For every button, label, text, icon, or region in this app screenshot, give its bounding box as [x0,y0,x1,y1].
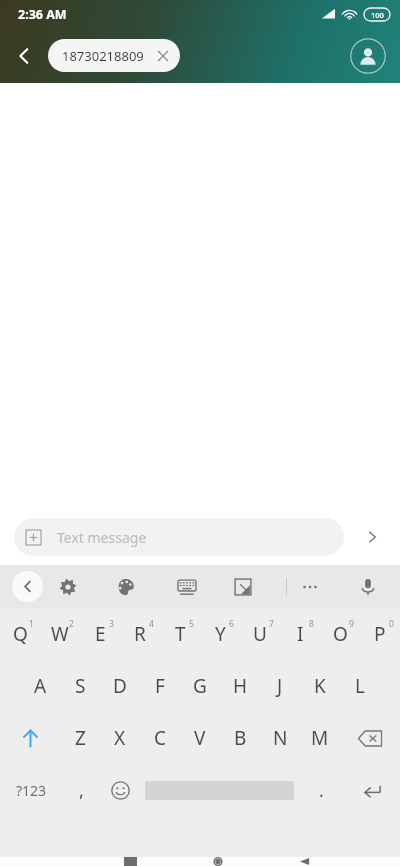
button[interactable]: P [360,608,400,660]
button[interactable]: , [62,764,101,816]
staticText: M [311,725,329,751]
button[interactable]: Z [60,712,100,764]
button[interactable]: Back [12,571,43,602]
staticText: 6 [229,618,234,630]
staticText: 7 [269,618,274,630]
staticText: 1 [29,618,34,630]
staticText: 0 [389,618,394,630]
button[interactable]: Emoji [101,764,140,816]
staticText: K [314,673,326,699]
button[interactable]: Back [261,857,348,866]
button[interactable]: B [220,712,260,764]
button[interactable]: Y [200,608,240,660]
staticText: G [193,673,207,699]
button[interactable]: Clear [154,47,172,65]
staticText: L [355,673,365,699]
button[interactable]: Home [174,857,261,866]
staticText: Z [75,725,86,751]
button[interactable]: E [80,608,120,660]
button[interactable]: Contact [342,30,394,82]
button[interactable]: X [100,712,140,764]
button[interactable]: R [120,608,160,660]
button[interactable]: F [140,660,180,712]
button[interactable]: More options [291,568,329,606]
button[interactable]: O [320,608,360,660]
button[interactable]: K [300,660,340,712]
staticText: F [155,673,165,699]
button[interactable]: Enter [345,764,400,816]
button[interactable]: L [340,660,380,712]
button[interactable]: Back [0,32,48,80]
staticText: Q [13,621,28,647]
staticText: H [233,673,248,699]
staticText: V [194,725,206,751]
button[interactable]: Keyboard layout [168,568,206,606]
staticText: D [113,673,127,699]
button[interactable]: W [40,608,80,660]
button[interactable]: U [240,608,280,660]
staticText: N [273,725,288,751]
staticText: 5 [189,618,194,630]
staticText: Y [215,621,226,647]
staticText: 8 [309,618,314,630]
staticText: O [333,621,348,647]
button[interactable]: M [300,712,340,764]
button[interactable]: D [100,660,140,712]
staticText: R [134,621,146,647]
button[interactable]: V [180,712,220,764]
staticText: S [75,673,86,699]
button[interactable]: J [260,660,300,712]
button[interactable]: N [260,712,300,764]
staticText: U [253,621,267,647]
button[interactable]: T [160,608,200,660]
button[interactable]: Theme [107,568,145,606]
staticText: ?123 [16,781,47,800]
staticText: 3 [109,618,114,630]
staticText: E [95,621,106,647]
button[interactable]: 18730218809 [48,39,180,72]
staticText: 2:36 AM [18,6,67,23]
staticText: X [114,725,126,751]
button[interactable]: Q [0,608,40,660]
button[interactable]: Send [344,513,400,561]
staticText: 100 [371,10,384,20]
button[interactable]: C [140,712,180,764]
button[interactable]: Settings [49,568,87,606]
staticText: B [234,725,247,751]
staticText: 9 [349,618,354,630]
staticText: Text message [57,528,147,547]
button[interactable]: G [180,660,220,712]
button[interactable]: . [298,764,345,816]
staticText: . [319,778,324,803]
staticText: 2 [69,618,74,630]
staticText: C [154,725,167,751]
button[interactable]: A [20,660,60,712]
button[interactable]: H [220,660,260,712]
button[interactable]: S [60,660,100,712]
button[interactable]: Recent apps [87,857,174,866]
staticText: 18730218809 [62,47,144,65]
button[interactable]: Voice input [349,568,387,606]
staticText: W [51,621,69,647]
button[interactable]: Shift [0,712,60,764]
button[interactable]: Text message [14,518,344,556]
staticText: T [175,621,186,647]
staticText: A [34,673,47,699]
button[interactable]: ?123 [0,764,62,816]
button[interactable]: Backspace [340,712,400,764]
staticText: I [297,621,304,647]
staticText: J [277,673,283,699]
button[interactable]: Space [140,764,298,816]
staticText: , [79,778,84,803]
button[interactable]: Resize [224,568,262,606]
button[interactable]: I [280,608,320,660]
staticText: 4 [149,618,154,630]
staticText: P [374,621,386,647]
